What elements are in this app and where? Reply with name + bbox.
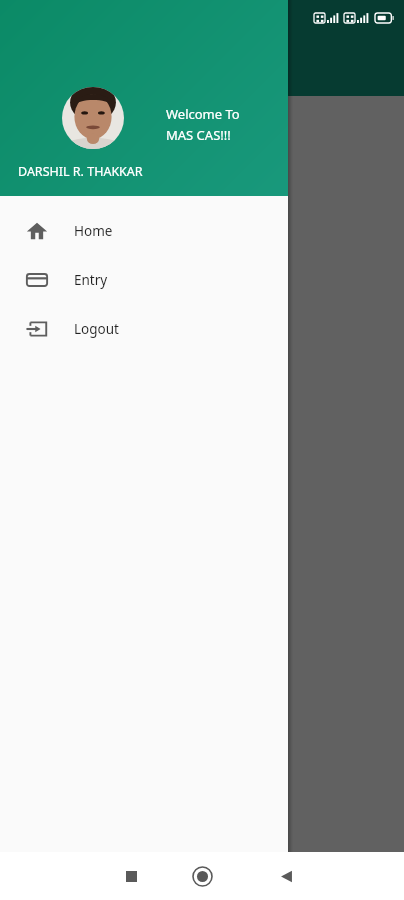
button[interactable]: Home [178,852,226,900]
button[interactable]: Home [0,206,288,255]
staticText: Entry [74,271,108,289]
staticText: DARSHIL R. THAKKAR [18,163,143,180]
staticText: Welcome To [166,105,240,123]
button[interactable]: Recents [107,852,155,900]
staticText: Home [74,222,113,240]
button[interactable]: Logout [0,304,288,353]
staticText: MAS CAS!!! [166,126,231,144]
button[interactable]: Back [262,852,310,900]
staticText: Logout [74,320,119,338]
button[interactable]: Entry [0,255,288,304]
